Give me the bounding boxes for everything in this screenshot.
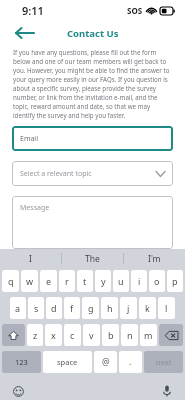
- button[interactable]: q: [2, 270, 19, 292]
- button[interactable]: 123: [2, 351, 41, 373]
- button[interactable]: z: [27, 324, 43, 346]
- button[interactable]: y: [95, 270, 111, 292]
- button[interactable]: r: [59, 270, 75, 292]
- button[interactable]: Voice input: [157, 382, 177, 400]
- button[interactable]: Back: [10, 21, 40, 45]
- button[interactable]: Select a relevant topic: [12, 161, 173, 186]
- button[interactable]: o: [149, 270, 165, 292]
- staticText: d: [51, 302, 57, 314]
- staticText: SOS: [127, 5, 143, 16]
- staticText: n: [127, 329, 133, 341]
- staticText: u: [118, 275, 124, 287]
- staticText: I'm: [148, 253, 161, 265]
- staticText: p: [172, 275, 178, 287]
- button[interactable]: i: [131, 270, 147, 292]
- staticText: e: [46, 275, 52, 287]
- staticText: f: [70, 302, 74, 314]
- staticText: 123: [15, 357, 28, 367]
- button[interactable]: a: [10, 297, 26, 319]
- staticText: r: [65, 275, 69, 287]
- button[interactable]: f: [64, 297, 80, 319]
- staticText: h: [107, 302, 113, 314]
- staticText: next: [156, 357, 172, 367]
- staticText: I: [29, 253, 32, 265]
- button[interactable]: p: [167, 270, 183, 292]
- button[interactable]: s: [28, 297, 44, 319]
- button[interactable]: next: [144, 351, 183, 373]
- button[interactable]: Emoji: [8, 382, 28, 400]
- button[interactable]: m: [140, 324, 157, 346]
- staticText: y: [101, 275, 106, 287]
- staticText: space: [57, 357, 78, 367]
- button[interactable]: t: [77, 270, 93, 292]
- button[interactable]: space: [43, 351, 92, 373]
- staticText: m: [144, 329, 153, 341]
- staticText: i: [138, 275, 141, 287]
- button[interactable]: The: [61, 249, 123, 268]
- staticText: l: [165, 302, 168, 314]
- button[interactable]: Backspace: [159, 324, 183, 346]
- button[interactable]: d: [46, 297, 62, 319]
- staticText: The: [85, 253, 100, 265]
- staticText: c: [70, 329, 75, 341]
- button[interactable]: I'm: [123, 249, 185, 268]
- button[interactable]: I: [0, 249, 61, 268]
- button[interactable]: @: [94, 351, 117, 373]
- staticText: Select a relevant topic: [20, 169, 92, 179]
- staticText: w: [26, 275, 34, 287]
- staticText: @: [102, 356, 110, 368]
- button[interactable]: h: [101, 297, 118, 319]
- button[interactable]: w: [21, 270, 38, 292]
- staticText: j: [127, 302, 130, 314]
- staticText: q: [8, 275, 14, 287]
- button[interactable]: x: [45, 324, 62, 346]
- button[interactable]: g: [82, 297, 99, 319]
- button[interactable]: Shift: [2, 324, 25, 346]
- staticText: g: [88, 302, 94, 314]
- staticText: If you have any questions, please fill o…: [13, 48, 172, 120]
- staticText: Contact Us: [67, 27, 119, 40]
- staticText: a: [15, 302, 21, 314]
- button[interactable]: v: [83, 324, 100, 346]
- staticText: k: [145, 302, 150, 314]
- button[interactable]: j: [120, 297, 137, 319]
- button[interactable]: l: [158, 297, 175, 319]
- button[interactable]: .: [119, 351, 142, 373]
- staticText: t: [83, 275, 87, 287]
- button[interactable]: Message: [12, 196, 173, 249]
- staticText: Message: [20, 203, 50, 213]
- button[interactable]: n: [121, 324, 138, 346]
- button[interactable]: b: [102, 324, 119, 346]
- staticText: 9:11: [22, 3, 44, 18]
- staticText: z: [33, 329, 38, 341]
- button[interactable]: c: [64, 324, 81, 346]
- button[interactable]: k: [139, 297, 156, 319]
- staticText: b: [108, 329, 114, 341]
- staticText: v: [89, 329, 94, 341]
- button[interactable]: u: [113, 270, 129, 292]
- staticText: o: [154, 275, 160, 287]
- staticText: x: [51, 329, 56, 341]
- button[interactable]: e: [40, 270, 57, 292]
- staticText: .: [129, 356, 132, 368]
- button[interactable]: Email: [12, 126, 173, 151]
- staticText: Email: [20, 134, 38, 144]
- staticText: s: [34, 302, 39, 314]
